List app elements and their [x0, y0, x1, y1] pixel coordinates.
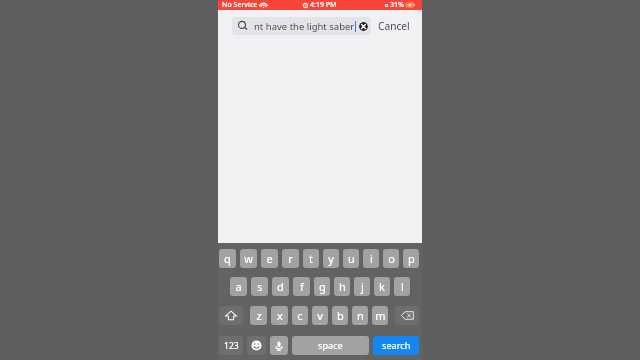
staticText: e [266, 251, 273, 266]
button[interactable]: h [334, 277, 350, 296]
button[interactable]: l [394, 277, 410, 296]
staticText: search [382, 339, 411, 352]
staticText: r [288, 251, 293, 266]
button[interactable]: b [332, 306, 348, 325]
button[interactable]: k [374, 277, 390, 296]
staticText: a [235, 279, 242, 294]
staticText: h [339, 279, 346, 294]
button[interactable]: 123 [219, 336, 243, 355]
staticText: Cancel [378, 19, 410, 33]
button[interactable]: v [312, 306, 328, 325]
staticText: m [375, 308, 386, 323]
staticText: nt have the light saber [254, 20, 355, 33]
button[interactable]: Cancel [378, 17, 410, 35]
staticText: i [370, 251, 373, 266]
staticText: b [337, 308, 344, 323]
staticText: c [297, 308, 303, 323]
staticText: u [348, 251, 355, 266]
button[interactable]: u [343, 249, 359, 268]
button[interactable]: s [251, 277, 268, 296]
button[interactable]: f [293, 277, 310, 296]
staticText: q [224, 251, 231, 266]
other: Search [238, 21, 248, 31]
button[interactable]: e [261, 249, 278, 268]
button[interactable]: c [292, 306, 308, 325]
button[interactable]: g [314, 277, 330, 296]
button[interactable]: t [303, 249, 319, 268]
staticText: o [388, 251, 395, 266]
staticText: p [408, 251, 415, 266]
staticText: l [401, 279, 404, 294]
button[interactable]: y [323, 249, 339, 268]
staticText: d [277, 279, 284, 294]
button[interactable]: j [354, 277, 370, 296]
button[interactable]: Backspace [395, 306, 419, 325]
button[interactable]: q [219, 249, 236, 268]
button[interactable]: search [373, 336, 419, 355]
button[interactable]: x [271, 306, 288, 325]
button[interactable]: i [363, 249, 379, 268]
button[interactable]: Emoji keyboard [247, 336, 266, 355]
staticText: s [257, 279, 263, 294]
button[interactable]: Clear text [359, 22, 368, 31]
button[interactable]: w [240, 249, 257, 268]
staticText: g [319, 279, 326, 294]
staticText: x [277, 308, 283, 323]
button[interactable]: z [250, 306, 267, 325]
staticText: 4:19 PM [310, 0, 337, 10]
button[interactable]: p [403, 249, 419, 268]
button[interactable]: n [352, 306, 368, 325]
staticText: y [328, 251, 334, 266]
staticText: space [318, 339, 343, 352]
staticText: 31% [390, 0, 404, 10]
button[interactable]: Voice input [270, 336, 288, 355]
button[interactable]: o [383, 249, 399, 268]
staticText: w [244, 251, 253, 266]
staticText: No Service [222, 0, 258, 10]
button[interactable]: m [372, 306, 388, 325]
staticText: t [309, 251, 313, 266]
staticText: f [300, 279, 304, 294]
button[interactable]: a [230, 277, 247, 296]
staticText: z [256, 308, 262, 323]
button[interactable]: r [282, 249, 299, 268]
staticText: 123 [224, 340, 239, 352]
button[interactable]: Shift [219, 306, 243, 325]
staticText: v [317, 308, 323, 323]
button[interactable]: d [272, 277, 289, 296]
staticText: k [379, 279, 385, 294]
button[interactable]: space [292, 336, 369, 355]
staticText: j [361, 279, 364, 294]
staticText: n [357, 308, 364, 323]
button[interactable]: Search [232, 17, 371, 35]
